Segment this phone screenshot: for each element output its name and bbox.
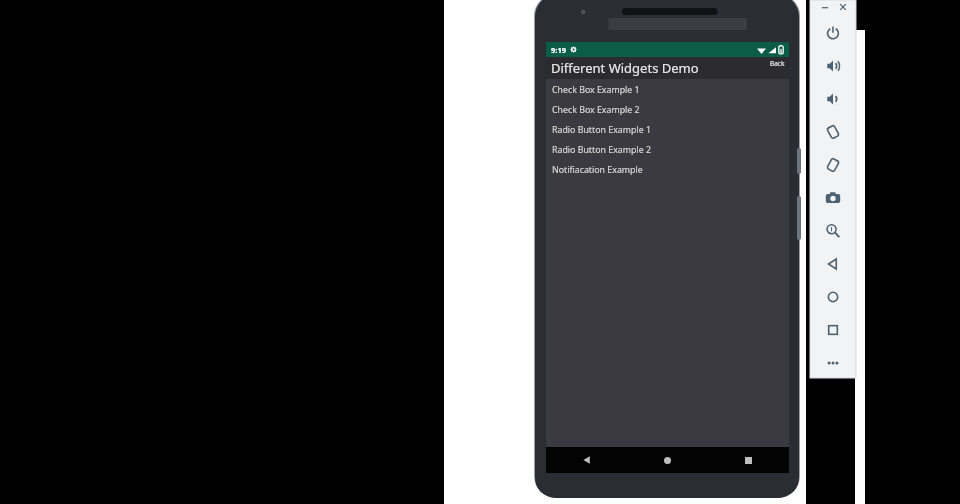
button[interactable]: Power bbox=[810, 16, 856, 49]
button[interactable]: Back bbox=[546, 447, 627, 473]
button[interactable]: Notifiacation Example bbox=[546, 160, 789, 180]
button[interactable]: Minimize bbox=[818, 0, 832, 14]
button[interactable]: Check Box Example 1 bbox=[546, 80, 789, 100]
button[interactable]: More bbox=[810, 346, 856, 379]
button[interactable]: Overview bbox=[810, 313, 856, 346]
button[interactable]: Zoom bbox=[810, 214, 856, 247]
button[interactable]: Volume down bbox=[810, 82, 856, 115]
staticText: Radio Button Example 2 bbox=[552, 144, 651, 156]
staticText: Check Box Example 1 bbox=[552, 84, 640, 96]
button[interactable]: Back bbox=[810, 247, 856, 280]
button[interactable]: Take screenshot bbox=[810, 181, 856, 214]
button[interactable]: Close bbox=[836, 0, 850, 14]
staticText: Check Box Example 2 bbox=[552, 104, 640, 116]
button[interactable]: Volume up bbox=[810, 49, 856, 82]
button[interactable]: Rotate left bbox=[810, 115, 856, 148]
staticText: Radio Button Example 1 bbox=[552, 124, 651, 136]
button[interactable]: Check Box Example 2 bbox=[546, 100, 789, 120]
staticText: Notifiacation Example bbox=[552, 164, 643, 176]
staticText: Different Widgets Demo bbox=[551, 59, 699, 77]
button[interactable]: Radio Button Example 1 bbox=[546, 120, 789, 140]
button[interactable]: Radio Button Example 2 bbox=[546, 140, 789, 160]
staticText: 9:19 bbox=[551, 45, 566, 55]
button[interactable]: Back bbox=[769, 58, 786, 69]
button[interactable]: Recents bbox=[708, 447, 789, 473]
button[interactable]: Home bbox=[627, 447, 708, 473]
button[interactable]: Home bbox=[810, 280, 856, 313]
button[interactable]: Rotate right bbox=[810, 148, 856, 181]
staticText: Back bbox=[770, 59, 785, 68]
